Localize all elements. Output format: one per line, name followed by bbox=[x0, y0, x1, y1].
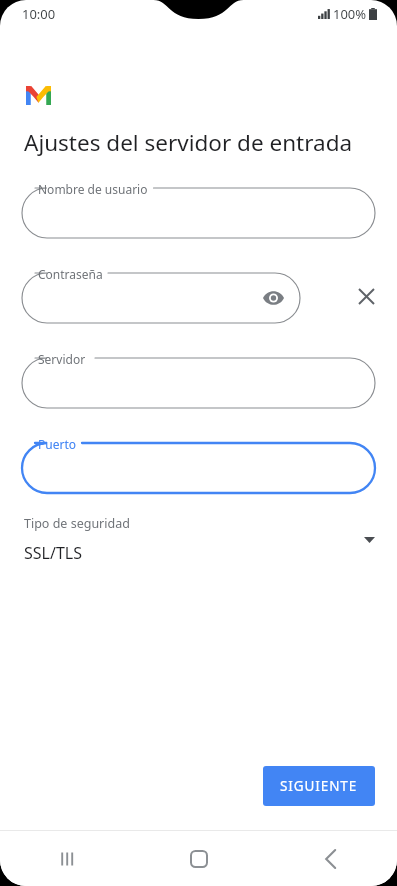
staticText: Ajustes del servidor de entrada bbox=[24, 127, 353, 158]
button[interactable] bbox=[22, 188, 375, 238]
button[interactable]: Mostrar contraseña bbox=[260, 285, 286, 311]
staticText: SSL/TLS bbox=[24, 542, 82, 564]
button[interactable]: Tipo de seguridad bbox=[0, 515, 397, 564]
staticText: Servidor bbox=[38, 351, 86, 367]
button[interactable]: Borrar bbox=[350, 280, 382, 312]
button[interactable]: Atrás bbox=[265, 831, 397, 886]
staticText: SIGUIENTE bbox=[280, 777, 358, 795]
button[interactable]: Inicio bbox=[133, 831, 265, 886]
staticText: Contraseña bbox=[38, 266, 103, 282]
button[interactable]: Recientes bbox=[0, 831, 133, 886]
button[interactable] bbox=[22, 443, 375, 493]
staticText: 100% bbox=[333, 5, 367, 23]
button[interactable] bbox=[22, 358, 375, 408]
button[interactable]: SIGUIENTE bbox=[263, 766, 375, 806]
staticText: Puerto bbox=[38, 436, 76, 452]
button[interactable]: Mostrar contraseña bbox=[22, 273, 300, 323]
staticText: Nombre de usuario bbox=[38, 181, 148, 197]
staticText: Tipo de seguridad bbox=[24, 515, 130, 532]
staticText: 10:00 bbox=[22, 5, 56, 23]
